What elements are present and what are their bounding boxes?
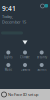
staticText: 9:41 — [2, 4, 16, 13]
staticText: Scenes — [37, 68, 46, 71]
button[interactable]: Climate — [17, 50, 33, 59]
button[interactable]: Music — [0, 63, 17, 71]
button[interactable]: Add — [44, 4, 48, 7]
button[interactable]: Settings — [40, 4, 44, 8]
staticText: No Face ID set up — [8, 92, 38, 97]
staticText: Security — [37, 55, 47, 59]
staticText: Camera — [20, 68, 29, 71]
button[interactable]: Camera — [17, 63, 33, 71]
staticText: Today, December 15 — [2, 14, 26, 24]
staticText: Music — [5, 68, 12, 71]
staticText: Lights — [4, 55, 12, 59]
button[interactable]: Scenes — [33, 63, 50, 71]
button[interactable]: Security — [33, 50, 50, 59]
button[interactable]: Lights — [0, 50, 17, 59]
staticText: Climate — [20, 55, 30, 59]
